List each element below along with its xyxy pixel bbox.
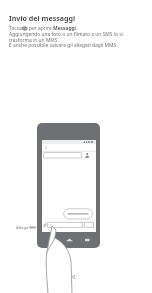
staticText: Invio dei messaggi [9,13,76,23]
staticText: È anche possibile salvare gli allegati d… [9,42,118,49]
staticText: 93 [70,274,76,281]
staticText: Toccare [9,25,27,32]
staticText: Allega file [16,224,36,230]
staticText: trasforma in un MMS. [9,37,59,44]
staticText: Aggiungendo una foto o un filmato a un S… [9,31,123,38]
staticText: per aprire Messaggi. [29,25,78,32]
